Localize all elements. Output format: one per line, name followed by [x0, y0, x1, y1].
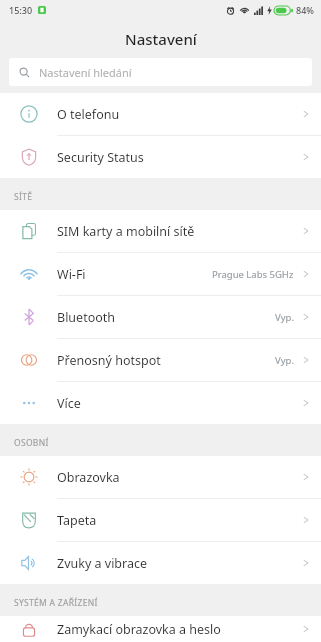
- button[interactable]: Více: [0, 382, 321, 424]
- staticText: Nastavení: [125, 29, 197, 49]
- button[interactable]: O telefonu: [0, 93, 321, 135]
- staticText: SIM karty a mobilní sítě: [57, 223, 302, 240]
- button[interactable]: Tapeta: [0, 499, 321, 541]
- button[interactable]: Obrazovka: [0, 456, 321, 498]
- staticText: O telefonu: [57, 106, 302, 123]
- staticText: SÍTĚ: [14, 191, 33, 203]
- staticText: Wi-Fi: [57, 266, 212, 283]
- staticText: OSOBNÍ: [14, 437, 49, 449]
- staticText: Bluetooth: [57, 309, 275, 326]
- button[interactable]: Zamykací obrazovka a heslo: [0, 616, 321, 642]
- button[interactable]: Zvuky a vibrace: [0, 542, 321, 584]
- staticText: Více: [57, 395, 302, 412]
- staticText: 84%: [296, 4, 314, 16]
- staticText: Prague Labs 5GHz: [212, 268, 294, 281]
- staticText: Zvuky a vibrace: [57, 555, 302, 572]
- staticText: SYSTÉM A ZAŘÍZENÍ: [14, 597, 98, 609]
- staticText: Vyp.: [275, 354, 294, 367]
- button[interactable]: Nastavení hledání: [9, 58, 312, 86]
- staticText: Security Status: [57, 149, 302, 166]
- staticText: Vyp.: [275, 311, 294, 324]
- button[interactable]: Bluetooth: [0, 296, 321, 338]
- staticText: Nastavení hledání: [39, 65, 132, 80]
- staticText: Tapeta: [57, 512, 302, 529]
- staticText: Přenosný hotspot: [57, 352, 275, 369]
- staticText: Obrazovka: [57, 469, 302, 486]
- staticText: Zamykací obrazovka a heslo: [57, 621, 302, 638]
- button[interactable]: Wi-Fi: [0, 253, 321, 295]
- staticText: 15:30: [9, 4, 33, 16]
- button[interactable]: Security Status: [0, 136, 321, 178]
- button[interactable]: Přenosný hotspot: [0, 339, 321, 381]
- button[interactable]: SIM karty a mobilní sítě: [0, 210, 321, 252]
